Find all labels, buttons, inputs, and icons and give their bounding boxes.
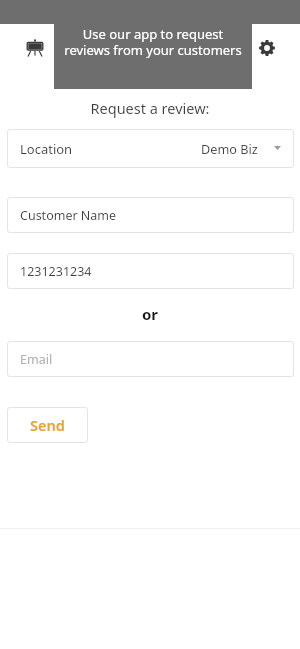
staticText: 1231231234 bbox=[20, 263, 92, 280]
staticText: Location bbox=[20, 140, 73, 158]
staticText: Customer Name bbox=[20, 207, 117, 224]
staticText: Use our app to request reviews from your… bbox=[64, 25, 242, 58]
staticText: or bbox=[0, 304, 300, 324]
button[interactable]: Send bbox=[7, 407, 88, 443]
button[interactable]: Presentation bbox=[19, 32, 51, 64]
staticText: Send bbox=[30, 415, 65, 435]
button[interactable]: Use our app to request reviews from your… bbox=[54, 0, 252, 89]
button[interactable]: Location bbox=[7, 129, 294, 168]
staticText: Demo Biz bbox=[201, 140, 258, 157]
button[interactable]: Customer Name bbox=[7, 197, 294, 233]
button[interactable]: 1231231234 bbox=[7, 253, 294, 289]
button[interactable]: Email bbox=[7, 341, 294, 377]
button[interactable]: Settings bbox=[251, 32, 283, 64]
staticText: Request a review: bbox=[0, 98, 300, 118]
staticText: Email bbox=[20, 351, 53, 368]
